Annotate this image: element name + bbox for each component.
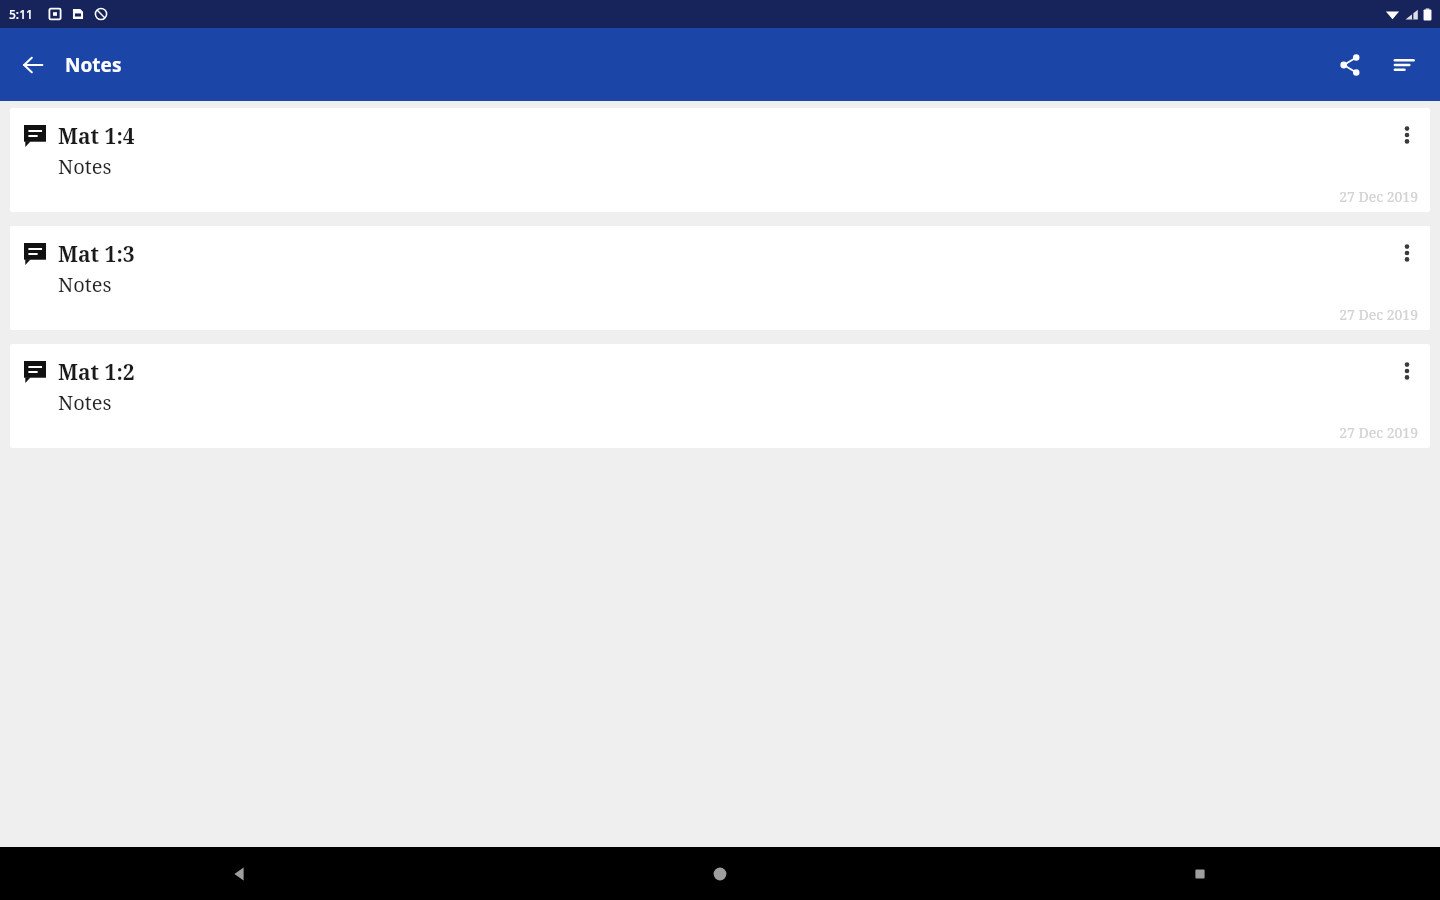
button[interactable]: Mat 1:3 bbox=[10, 226, 1430, 330]
staticText: 27 Dec 2019 bbox=[1339, 305, 1418, 324]
staticText: Notes bbox=[65, 52, 122, 78]
button[interactable]: Back bbox=[0, 847, 480, 900]
button[interactable]: Share bbox=[1326, 41, 1374, 89]
staticText: Notes bbox=[58, 271, 112, 298]
button[interactable]: More options bbox=[1386, 350, 1428, 392]
button[interactable]: More options bbox=[1386, 114, 1428, 156]
staticText: Mat 1:2 bbox=[58, 358, 135, 387]
staticText: 5:11 bbox=[9, 6, 33, 22]
button[interactable]: Recent apps bbox=[960, 847, 1440, 900]
staticText: 27 Dec 2019 bbox=[1339, 187, 1418, 206]
staticText: Notes bbox=[58, 153, 112, 180]
button[interactable]: Back bbox=[10, 42, 56, 88]
button[interactable]: More options bbox=[1386, 232, 1428, 274]
staticText: Notes bbox=[58, 389, 112, 416]
button[interactable]: Mat 1:2 bbox=[10, 344, 1430, 448]
button[interactable]: Sort bbox=[1380, 41, 1428, 89]
button[interactable]: Mat 1:4 bbox=[10, 108, 1430, 212]
button[interactable]: Home bbox=[480, 847, 960, 900]
staticText: Mat 1:4 bbox=[58, 122, 135, 151]
staticText: 27 Dec 2019 bbox=[1339, 423, 1418, 442]
staticText: Mat 1:3 bbox=[58, 240, 135, 269]
